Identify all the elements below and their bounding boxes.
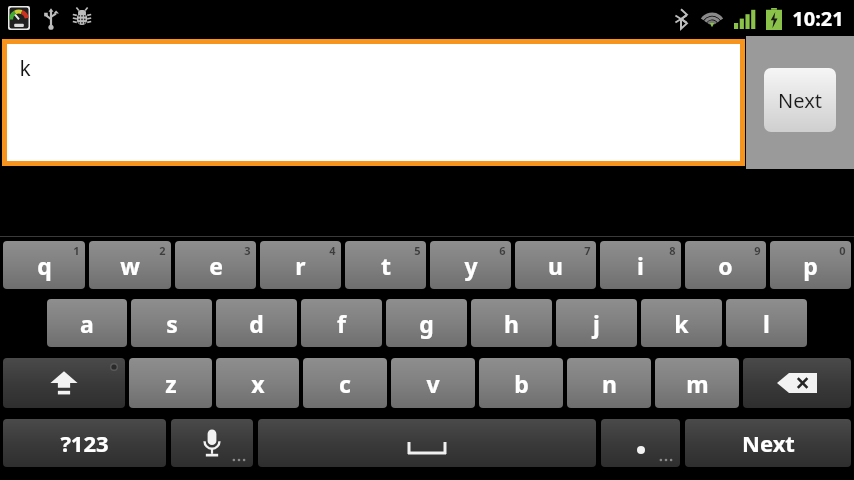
- button[interactable]: h: [471, 299, 552, 347]
- button[interactable]: 1: [3, 241, 85, 289]
- button[interactable]: 2: [89, 241, 171, 289]
- staticText: w: [120, 250, 140, 281]
- staticText: g: [419, 308, 434, 339]
- staticText: r: [295, 250, 306, 281]
- button[interactable]: d: [216, 299, 297, 347]
- staticText: k: [674, 308, 689, 339]
- button[interactable]: 9: [685, 241, 766, 289]
- staticText: Next: [742, 428, 795, 458]
- staticText: 8: [669, 243, 676, 258]
- staticText: j: [593, 308, 600, 339]
- staticText: v: [426, 368, 440, 399]
- staticText: s: [166, 308, 178, 339]
- staticText: o: [718, 250, 733, 281]
- button[interactable]: k: [7, 44, 740, 161]
- button[interactable]: k: [641, 299, 722, 347]
- staticText: z: [165, 368, 177, 399]
- button[interactable]: 7: [515, 241, 596, 289]
- staticText: y: [464, 250, 478, 281]
- button[interactable]: f: [301, 299, 382, 347]
- staticText: ?123: [60, 428, 109, 458]
- button[interactable]: x: [216, 358, 299, 408]
- staticText: 7: [584, 243, 591, 258]
- button[interactable]: Next: [764, 68, 836, 132]
- staticText: u: [548, 250, 563, 281]
- staticText: h: [504, 308, 519, 339]
- staticText: a: [80, 308, 94, 339]
- button[interactable]: Period: [601, 419, 680, 467]
- button[interactable]: g: [386, 299, 467, 347]
- button[interactable]: v: [391, 358, 475, 408]
- staticText: e: [209, 250, 223, 281]
- staticText: 9: [754, 243, 761, 258]
- button[interactable]: ?123: [3, 419, 166, 467]
- button[interactable]: c: [303, 358, 387, 408]
- button[interactable]: 8: [600, 241, 681, 289]
- button[interactable]: Voice input: [171, 419, 253, 467]
- button[interactable]: Space: [258, 419, 596, 467]
- button[interactable]: 3: [175, 241, 256, 289]
- button[interactable]: l: [726, 299, 807, 347]
- staticText: 0: [839, 243, 846, 258]
- button[interactable]: Delete: [743, 358, 851, 408]
- staticText: 6: [499, 243, 506, 258]
- staticText: q: [37, 250, 52, 281]
- staticText: k: [19, 54, 31, 83]
- staticText: m: [686, 368, 709, 399]
- button[interactable]: j: [556, 299, 637, 347]
- staticText: 3: [244, 243, 251, 258]
- staticText: i: [637, 250, 644, 281]
- staticText: c: [339, 368, 351, 399]
- staticText: 2: [159, 243, 166, 258]
- staticText: t: [381, 250, 391, 281]
- staticText: b: [514, 368, 529, 399]
- button[interactable]: s: [131, 299, 212, 347]
- button[interactable]: 6: [430, 241, 511, 289]
- button[interactable]: a: [47, 299, 127, 347]
- button[interactable]: 5: [345, 241, 426, 289]
- staticText: l: [763, 308, 770, 339]
- staticText: Next: [778, 87, 822, 114]
- button[interactable]: Shift: [3, 358, 125, 408]
- staticText: x: [251, 368, 265, 399]
- staticText: p: [803, 250, 818, 281]
- staticText: 1: [73, 243, 80, 258]
- staticText: 10:21: [792, 5, 844, 32]
- button[interactable]: z: [129, 358, 212, 408]
- button[interactable]: 4: [260, 241, 341, 289]
- staticText: 5: [414, 243, 421, 258]
- staticText: n: [602, 368, 617, 399]
- button[interactable]: Next: [685, 419, 851, 467]
- button[interactable]: b: [479, 358, 563, 408]
- button[interactable]: 0: [770, 241, 851, 289]
- staticText: 4: [329, 243, 336, 258]
- staticText: f: [337, 308, 346, 339]
- button[interactable]: n: [567, 358, 651, 408]
- button[interactable]: m: [655, 358, 739, 408]
- staticText: d: [249, 308, 264, 339]
